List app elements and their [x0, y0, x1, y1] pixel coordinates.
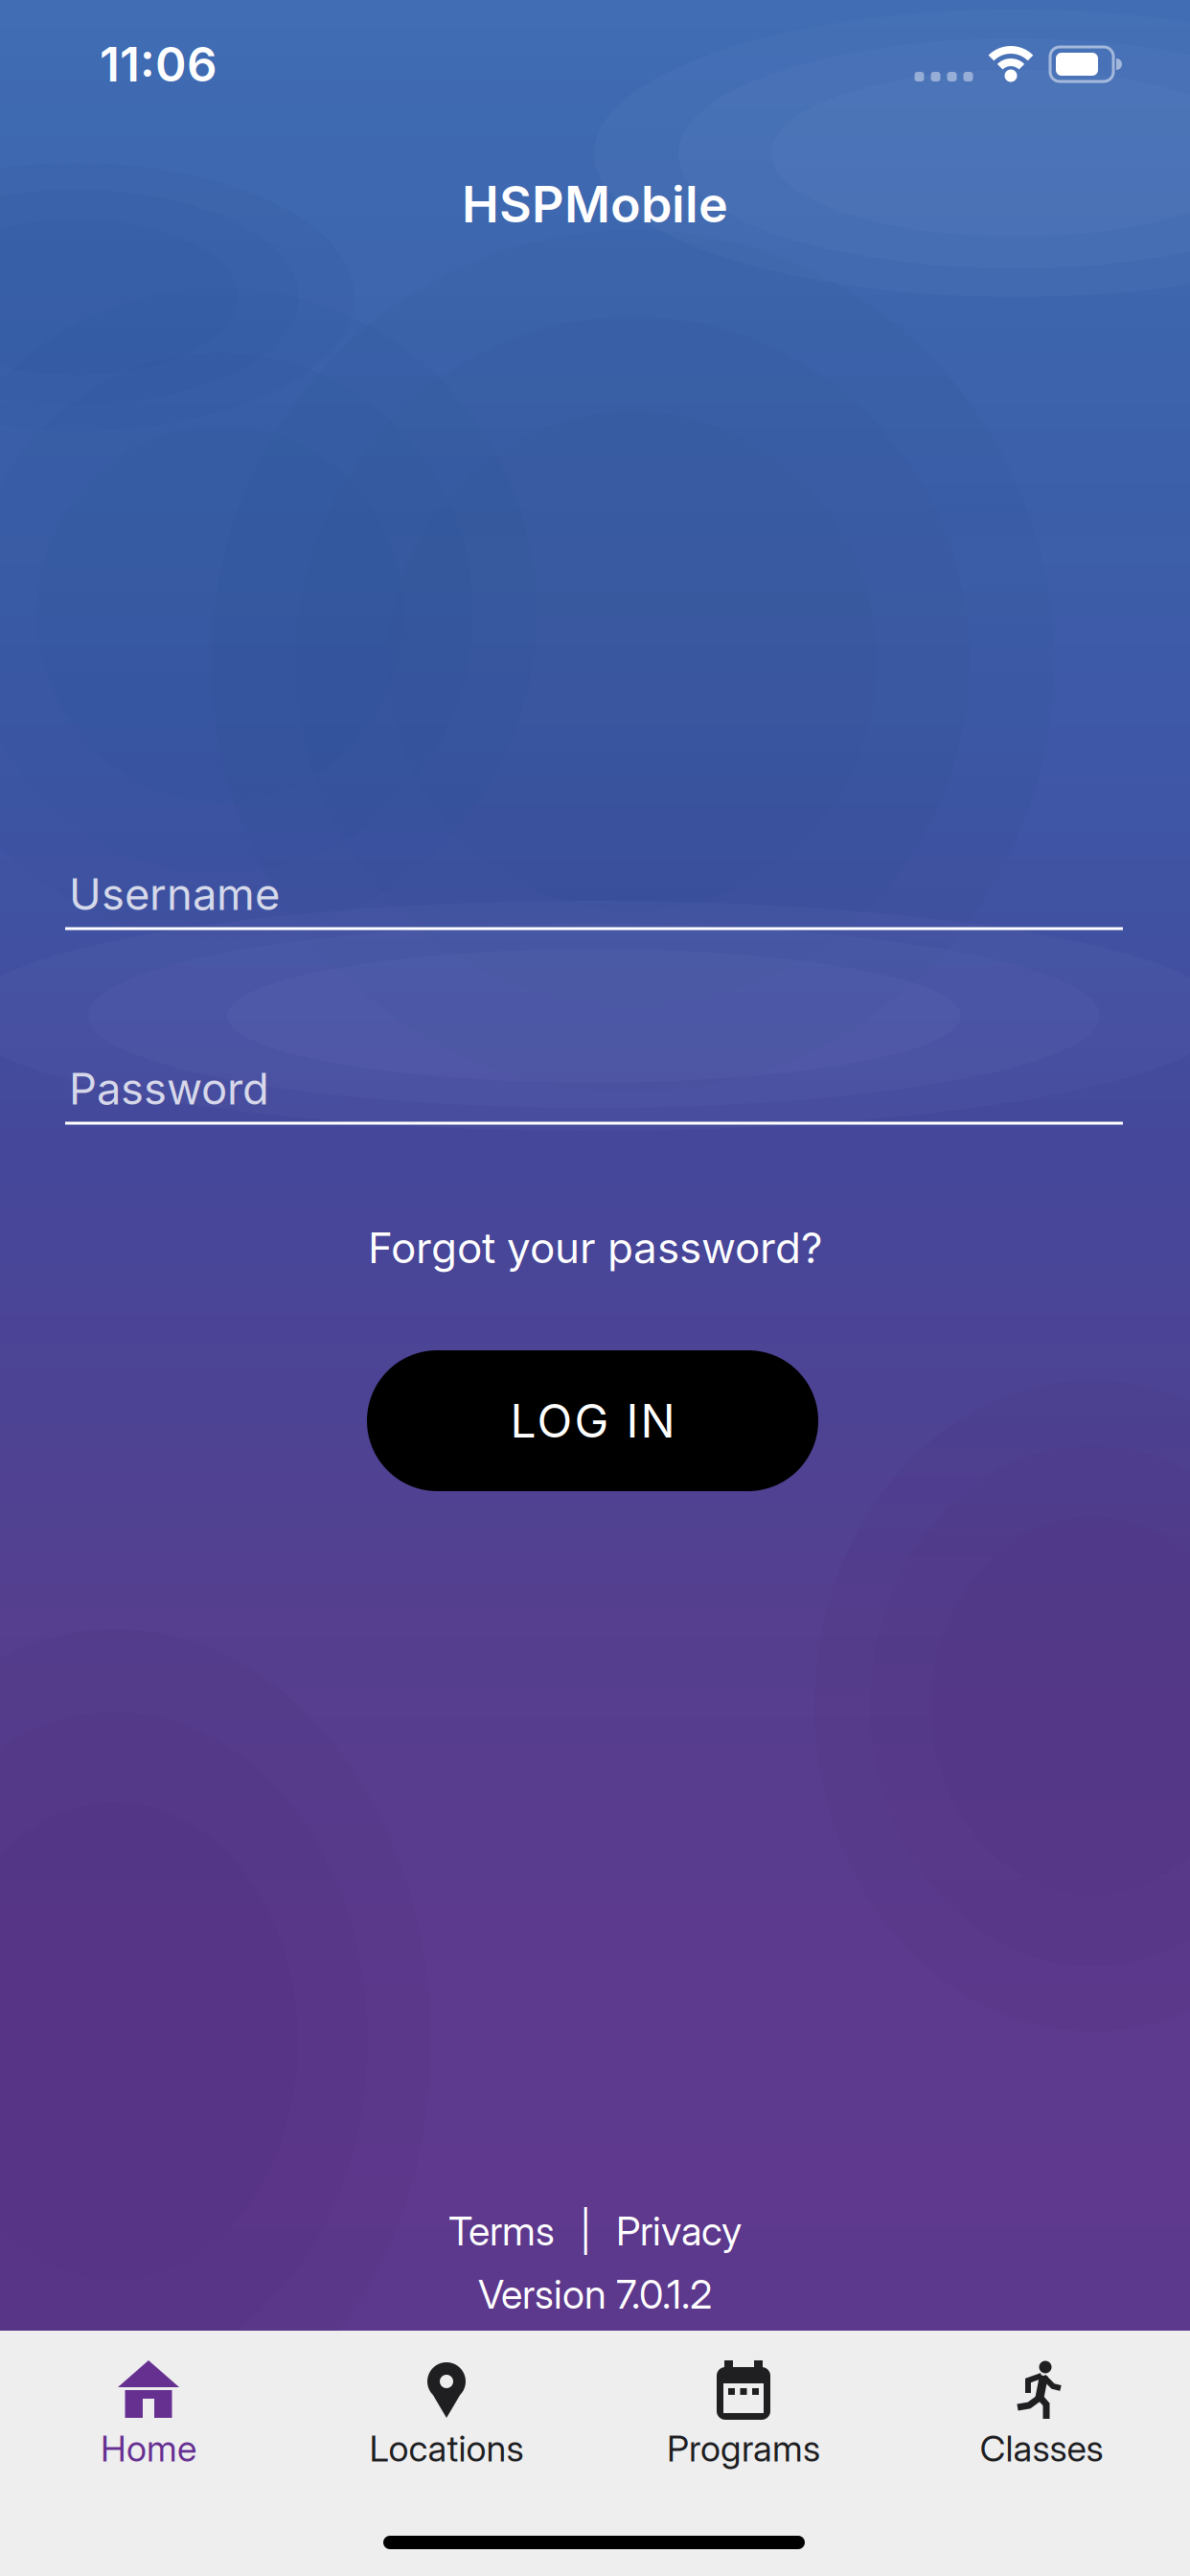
staticText: Programs [667, 2427, 820, 2470]
button[interactable]: LOG IN [367, 1350, 818, 1491]
staticText: Locations [369, 2427, 524, 2470]
button[interactable]: Home [10, 2353, 287, 2477]
staticText: LOG IN [510, 1394, 675, 1448]
button[interactable]: Terms [448, 2208, 555, 2254]
button[interactable]: Forgot your password? [368, 1223, 822, 1273]
button[interactable]: Privacy [616, 2208, 742, 2254]
staticText: Password [69, 1063, 269, 1114]
staticText: 11:06 [100, 36, 217, 92]
button[interactable]: Locations [308, 2353, 585, 2477]
button[interactable]: Classes [903, 2353, 1180, 2477]
staticText: HSPMobile [462, 175, 728, 233]
staticText: Privacy [616, 2208, 742, 2254]
staticText: Version 7.0.1.2 [478, 2271, 712, 2318]
staticText: | [580, 2208, 591, 2254]
staticText: Classes [980, 2427, 1103, 2470]
staticText: Terms [448, 2208, 555, 2254]
button[interactable]: Programs [605, 2353, 882, 2477]
staticText: Home [101, 2427, 196, 2470]
staticText: Username [69, 869, 280, 920]
staticText: Forgot your password? [368, 1223, 822, 1273]
